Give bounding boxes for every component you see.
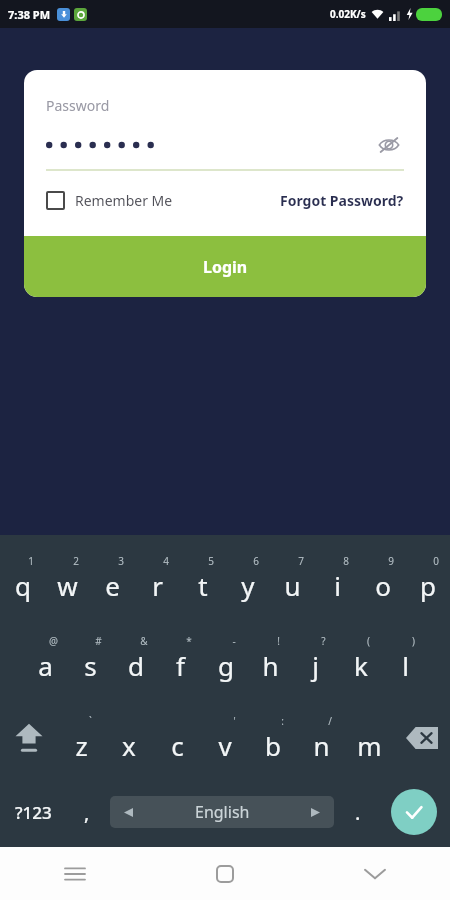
staticText: 5 bbox=[208, 554, 214, 568]
staticText: g bbox=[218, 648, 234, 683]
button[interactable]: Home bbox=[150, 847, 300, 900]
staticText: @ bbox=[49, 634, 58, 648]
staticText: ` bbox=[89, 714, 92, 728]
staticText: n bbox=[313, 728, 330, 763]
staticText: h bbox=[262, 648, 279, 683]
button[interactable]: . bbox=[338, 781, 377, 843]
staticText: * bbox=[186, 634, 192, 648]
staticText: x bbox=[122, 728, 136, 763]
staticText: & bbox=[140, 634, 148, 648]
staticText: # bbox=[95, 634, 102, 648]
staticText: ) bbox=[412, 634, 415, 648]
staticText: l bbox=[402, 648, 409, 683]
button[interactable]: Login bbox=[24, 236, 426, 297]
staticText: ' bbox=[233, 714, 236, 728]
button[interactable]: Show password bbox=[374, 133, 404, 157]
staticText: o bbox=[375, 568, 391, 603]
button[interactable]: m bbox=[345, 703, 393, 773]
button[interactable]: Enter bbox=[391, 789, 437, 835]
staticText: , bbox=[84, 799, 90, 826]
staticText: b bbox=[265, 728, 281, 763]
button[interactable]: ` bbox=[57, 703, 105, 773]
staticText: k bbox=[354, 648, 368, 683]
staticText: y bbox=[241, 568, 255, 603]
button[interactable]: Shift bbox=[0, 703, 57, 773]
staticText: / bbox=[328, 714, 332, 728]
staticText: d bbox=[128, 648, 144, 683]
staticText: - bbox=[232, 634, 236, 648]
staticText: 6 bbox=[253, 554, 259, 568]
staticText: q bbox=[15, 568, 31, 603]
button[interactable]: * bbox=[158, 623, 203, 693]
staticText: w bbox=[57, 568, 78, 603]
staticText: 3 bbox=[118, 554, 124, 568]
button[interactable]: Remember Me bbox=[46, 187, 173, 214]
staticText: 2 bbox=[73, 554, 79, 568]
staticText: ? bbox=[321, 634, 326, 648]
staticText: Password bbox=[46, 96, 110, 115]
button[interactable]: Hide keyboard bbox=[300, 847, 450, 900]
staticText: . bbox=[355, 799, 361, 826]
button[interactable]: 5 bbox=[180, 543, 225, 613]
button[interactable]: & bbox=[113, 623, 158, 693]
button[interactable]: - bbox=[203, 623, 248, 693]
staticText: 7:38 PM bbox=[8, 7, 51, 22]
staticText: 8 bbox=[343, 554, 349, 568]
staticText: ( bbox=[367, 634, 370, 648]
button[interactable]: 2 bbox=[45, 543, 90, 613]
button[interactable]: ! bbox=[248, 623, 293, 693]
staticText: : bbox=[281, 714, 284, 728]
staticText: v bbox=[218, 728, 232, 763]
staticText: English bbox=[195, 801, 250, 823]
staticText: f bbox=[176, 648, 185, 683]
button[interactable]: 0 bbox=[405, 543, 450, 613]
button[interactable]: 3 bbox=[90, 543, 135, 613]
staticText: m bbox=[357, 728, 382, 763]
staticText: j bbox=[312, 648, 319, 683]
button[interactable]: 9 bbox=[360, 543, 405, 613]
staticText: a bbox=[38, 648, 53, 683]
button[interactable]: Recents bbox=[0, 847, 150, 900]
staticText: 9 bbox=[388, 554, 394, 568]
staticText: ! bbox=[277, 634, 280, 648]
button[interactable]: @ bbox=[22, 623, 68, 693]
staticText: p bbox=[420, 568, 436, 603]
button[interactable]: 1 bbox=[0, 543, 45, 613]
staticText: Forgot Password? bbox=[280, 191, 404, 210]
button[interactable]: ? bbox=[293, 623, 338, 693]
button[interactable]: 7 bbox=[270, 543, 315, 613]
staticText: 0 bbox=[433, 554, 439, 568]
staticText: t bbox=[198, 568, 208, 603]
button[interactable]: x bbox=[105, 703, 153, 773]
button[interactable]: / bbox=[297, 703, 345, 773]
staticText: i bbox=[334, 568, 341, 603]
button[interactable]: 8 bbox=[315, 543, 360, 613]
button[interactable]: , bbox=[67, 781, 106, 843]
button[interactable]: c bbox=[153, 703, 201, 773]
button[interactable]: Backspace bbox=[393, 703, 450, 773]
button[interactable]: ' bbox=[201, 703, 249, 773]
staticText: z bbox=[75, 728, 88, 763]
staticText: 1 bbox=[28, 554, 34, 568]
staticText: e bbox=[105, 568, 120, 603]
staticText: 0.02K/s bbox=[330, 7, 366, 21]
button[interactable]: # bbox=[68, 623, 113, 693]
staticText: r bbox=[152, 568, 163, 603]
staticText: c bbox=[171, 728, 184, 763]
button[interactable]: ?123 bbox=[0, 781, 67, 843]
button[interactable]: : bbox=[249, 703, 297, 773]
button[interactable]: ) bbox=[383, 623, 428, 693]
staticText: Remember Me bbox=[75, 191, 173, 210]
staticText: Login bbox=[203, 256, 248, 278]
staticText: 7 bbox=[298, 554, 304, 568]
button[interactable]: 4 bbox=[135, 543, 180, 613]
button[interactable]: 6 bbox=[225, 543, 270, 613]
staticText: 4 bbox=[163, 554, 169, 568]
staticText: s bbox=[84, 648, 97, 683]
button[interactable]: Forgot Password? bbox=[280, 187, 404, 214]
button[interactable]: ( bbox=[338, 623, 383, 693]
staticText: ?123 bbox=[15, 801, 52, 824]
staticText: u bbox=[284, 568, 301, 603]
button[interactable]: Space, English bbox=[110, 796, 334, 828]
